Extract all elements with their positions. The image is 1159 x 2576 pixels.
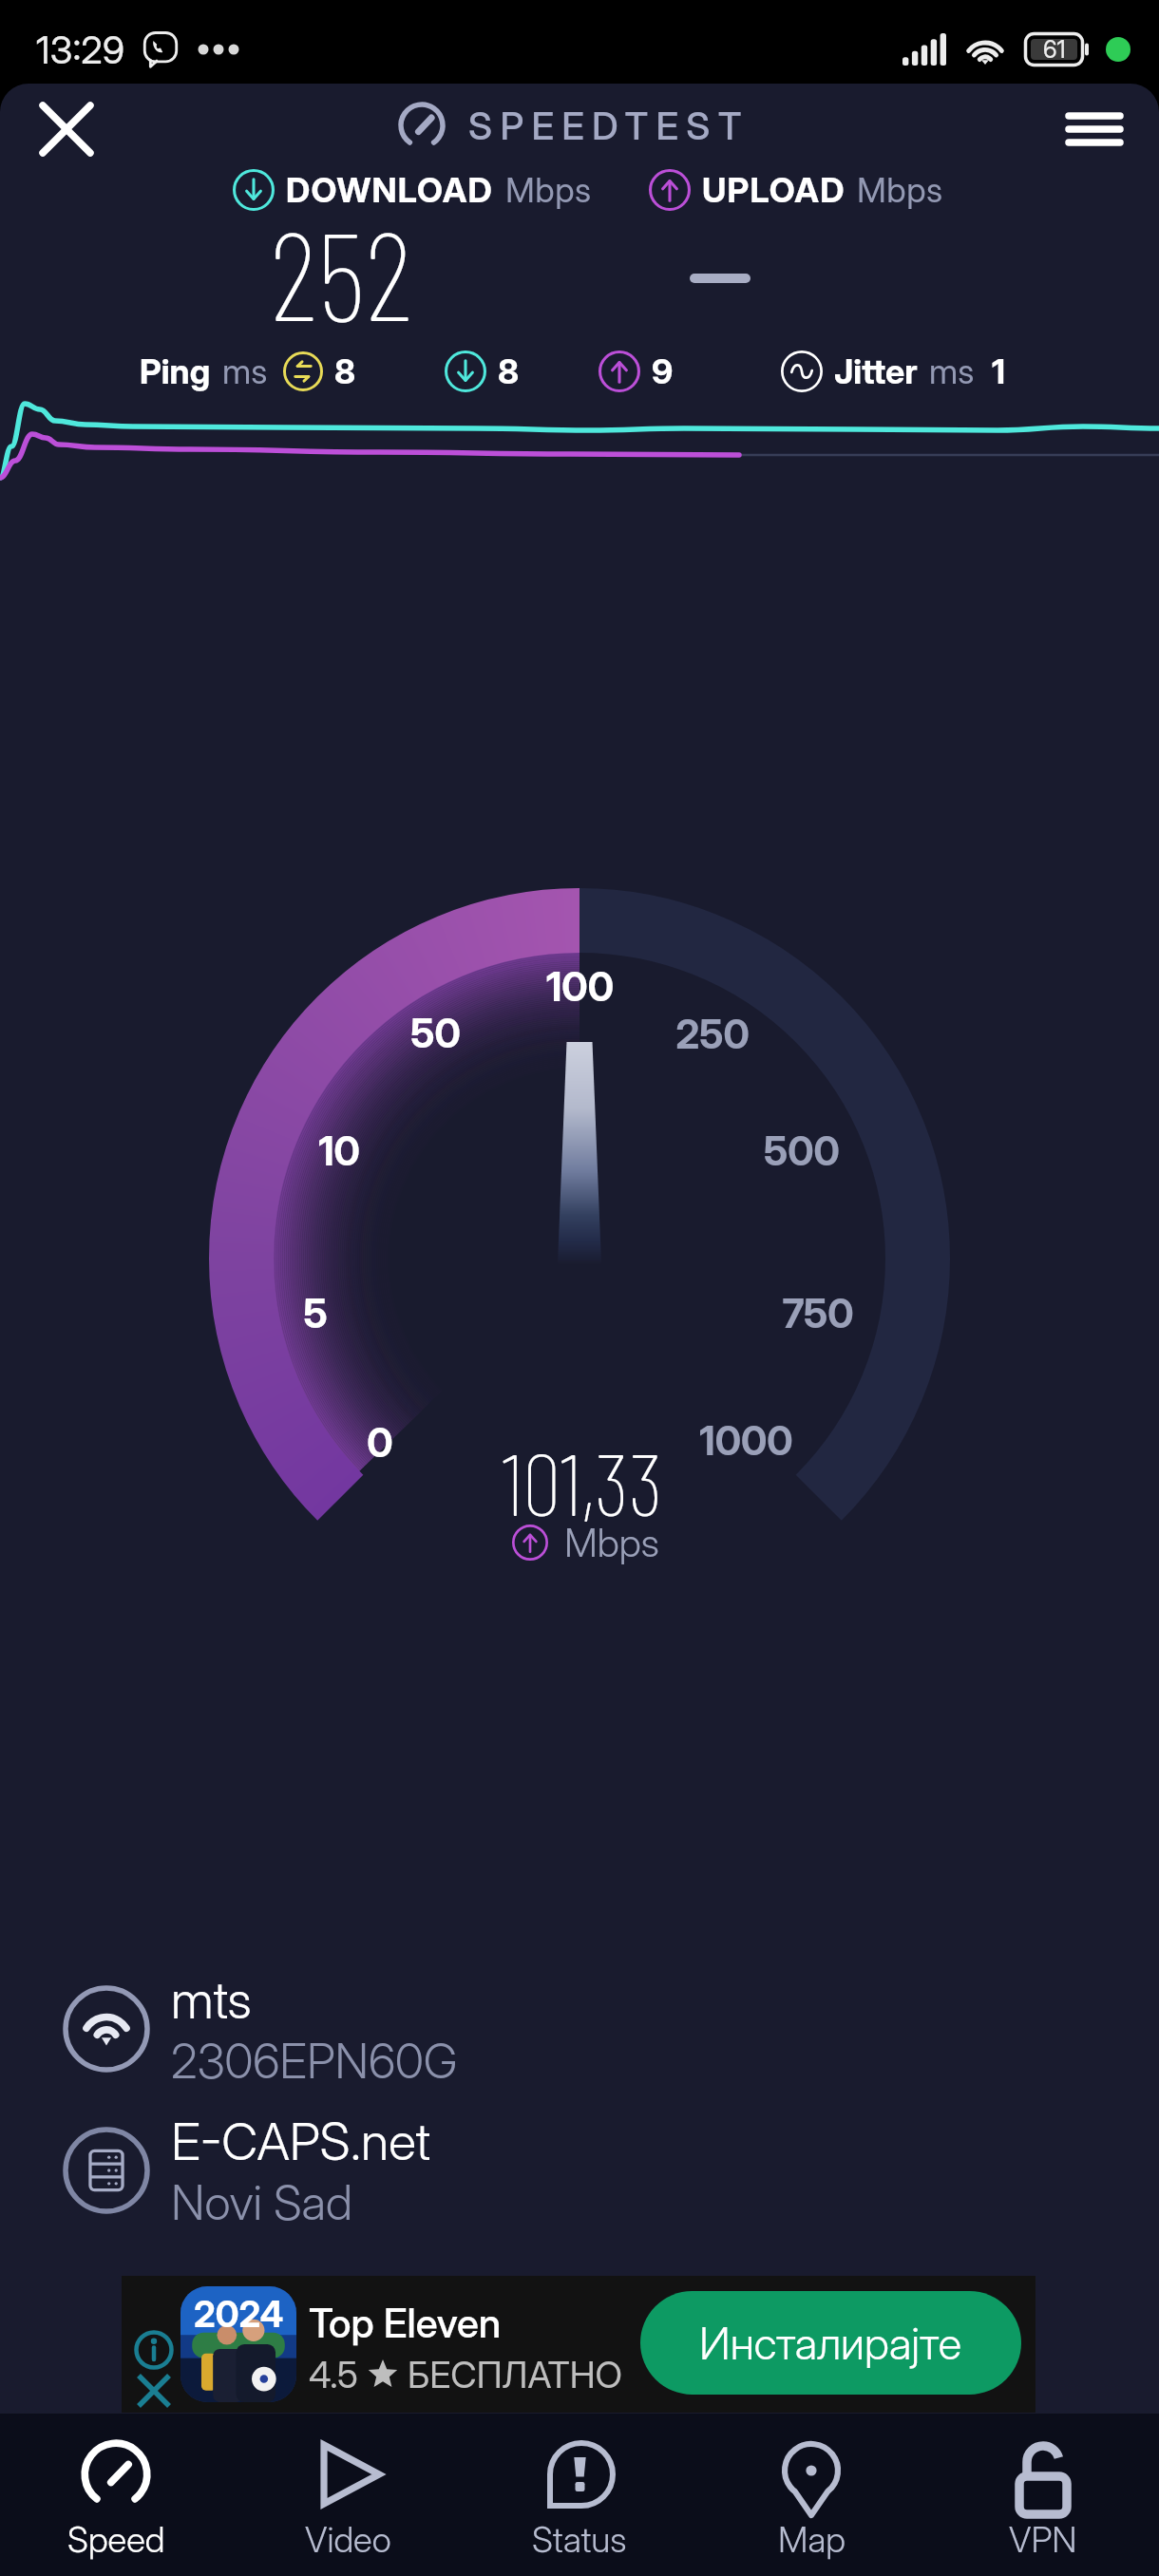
staticText: 500 — [764, 1127, 840, 1175]
button[interactable]: Video — [232, 2414, 464, 2576]
staticText: 0 — [367, 1418, 393, 1467]
staticText: Status — [532, 2518, 627, 2561]
button[interactable]: VPN — [927, 2414, 1159, 2576]
staticText: 61 — [1043, 35, 1066, 64]
staticText: Novi Sad — [171, 2174, 352, 2231]
staticText: Ping — [140, 350, 211, 392]
button[interactable]: Close ad — [134, 2371, 174, 2411]
staticText: 13:29 — [36, 27, 125, 72]
staticText: Map — [778, 2518, 845, 2561]
staticText: E-CAPS.net — [171, 2111, 430, 2172]
button[interactable]: Status — [464, 2414, 695, 2576]
staticText: mts — [171, 1969, 252, 2031]
button[interactable]: Menu — [1054, 89, 1134, 169]
staticText: UPLOAD — [702, 169, 845, 211]
button[interactable]: Инсталирајте — [640, 2291, 1021, 2395]
staticText: 8 — [334, 350, 356, 392]
staticText: 8 — [498, 350, 520, 392]
staticText: 2024 — [194, 2292, 284, 2336]
staticText: 4.5 — [309, 2353, 358, 2396]
staticText: 5 — [303, 1289, 328, 1337]
staticText: 100 — [546, 962, 614, 1011]
staticText: 101,33 — [502, 1430, 663, 1533]
staticText: 1000 — [699, 1416, 793, 1465]
staticText: SPEEDTEST — [468, 103, 750, 148]
staticText: Mbps — [564, 1519, 659, 1566]
button[interactable]: mts — [63, 1967, 785, 2091]
button[interactable]: Map — [695, 2414, 927, 2576]
staticText: 250 — [675, 1010, 750, 1058]
staticText: Speed — [67, 2518, 165, 2561]
staticText: 1 — [992, 350, 1006, 392]
staticText: Top Eleven — [309, 2299, 502, 2347]
button[interactable]: Close — [27, 89, 106, 169]
staticText: 10 — [318, 1127, 360, 1175]
button[interactable]: Ad info — [134, 2330, 174, 2370]
staticText: Video — [305, 2518, 391, 2561]
staticText: Mbps — [505, 169, 592, 211]
staticText: VPN — [1009, 2518, 1077, 2561]
staticText: БЕСПЛАТНО — [408, 2353, 623, 2396]
staticText: DOWNLOAD — [286, 169, 494, 211]
staticText: ms — [222, 350, 268, 392]
button[interactable]: 2024 — [122, 2276, 1035, 2413]
staticText: ms — [929, 350, 975, 392]
button[interactable]: Speed — [0, 2414, 232, 2576]
button[interactable]: E-CAPS.net — [63, 2109, 785, 2232]
staticText: Jitter — [834, 350, 918, 392]
staticText: 252 — [270, 198, 412, 346]
staticText: Инсталирајте — [699, 2317, 962, 2370]
staticText: 9 — [652, 350, 674, 392]
staticText: 50 — [410, 1009, 461, 1057]
staticText: 2306EPN60G — [171, 2033, 458, 2090]
staticText: Mbps — [857, 169, 943, 211]
staticText: 750 — [782, 1289, 854, 1337]
